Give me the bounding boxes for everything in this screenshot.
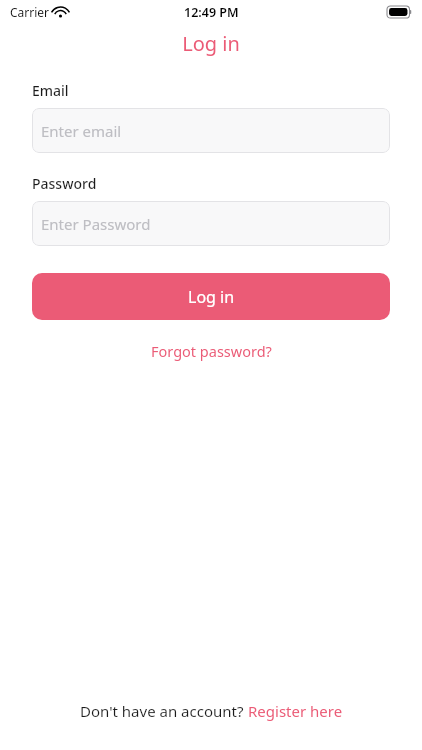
staticText: Log in bbox=[188, 286, 235, 308]
staticText: Password bbox=[32, 174, 97, 193]
staticText: Email bbox=[32, 81, 69, 100]
button[interactable]: Enter Password bbox=[32, 201, 390, 246]
staticText: Enter email bbox=[41, 121, 122, 141]
button[interactable]: Forgot password? bbox=[141, 337, 282, 365]
staticText: Carrier bbox=[10, 4, 50, 20]
staticText: 12:49 PM bbox=[184, 4, 239, 21]
staticText: Don't have an account? bbox=[80, 701, 248, 721]
button[interactable]: Enter email bbox=[32, 108, 390, 153]
staticText: Forgot password? bbox=[151, 341, 272, 361]
staticText: Log in bbox=[182, 30, 240, 57]
button[interactable]: Register here bbox=[248, 701, 343, 721]
staticText: Register here bbox=[248, 701, 343, 721]
staticText: Enter Password bbox=[41, 214, 151, 234]
button[interactable]: Log in bbox=[32, 273, 390, 320]
